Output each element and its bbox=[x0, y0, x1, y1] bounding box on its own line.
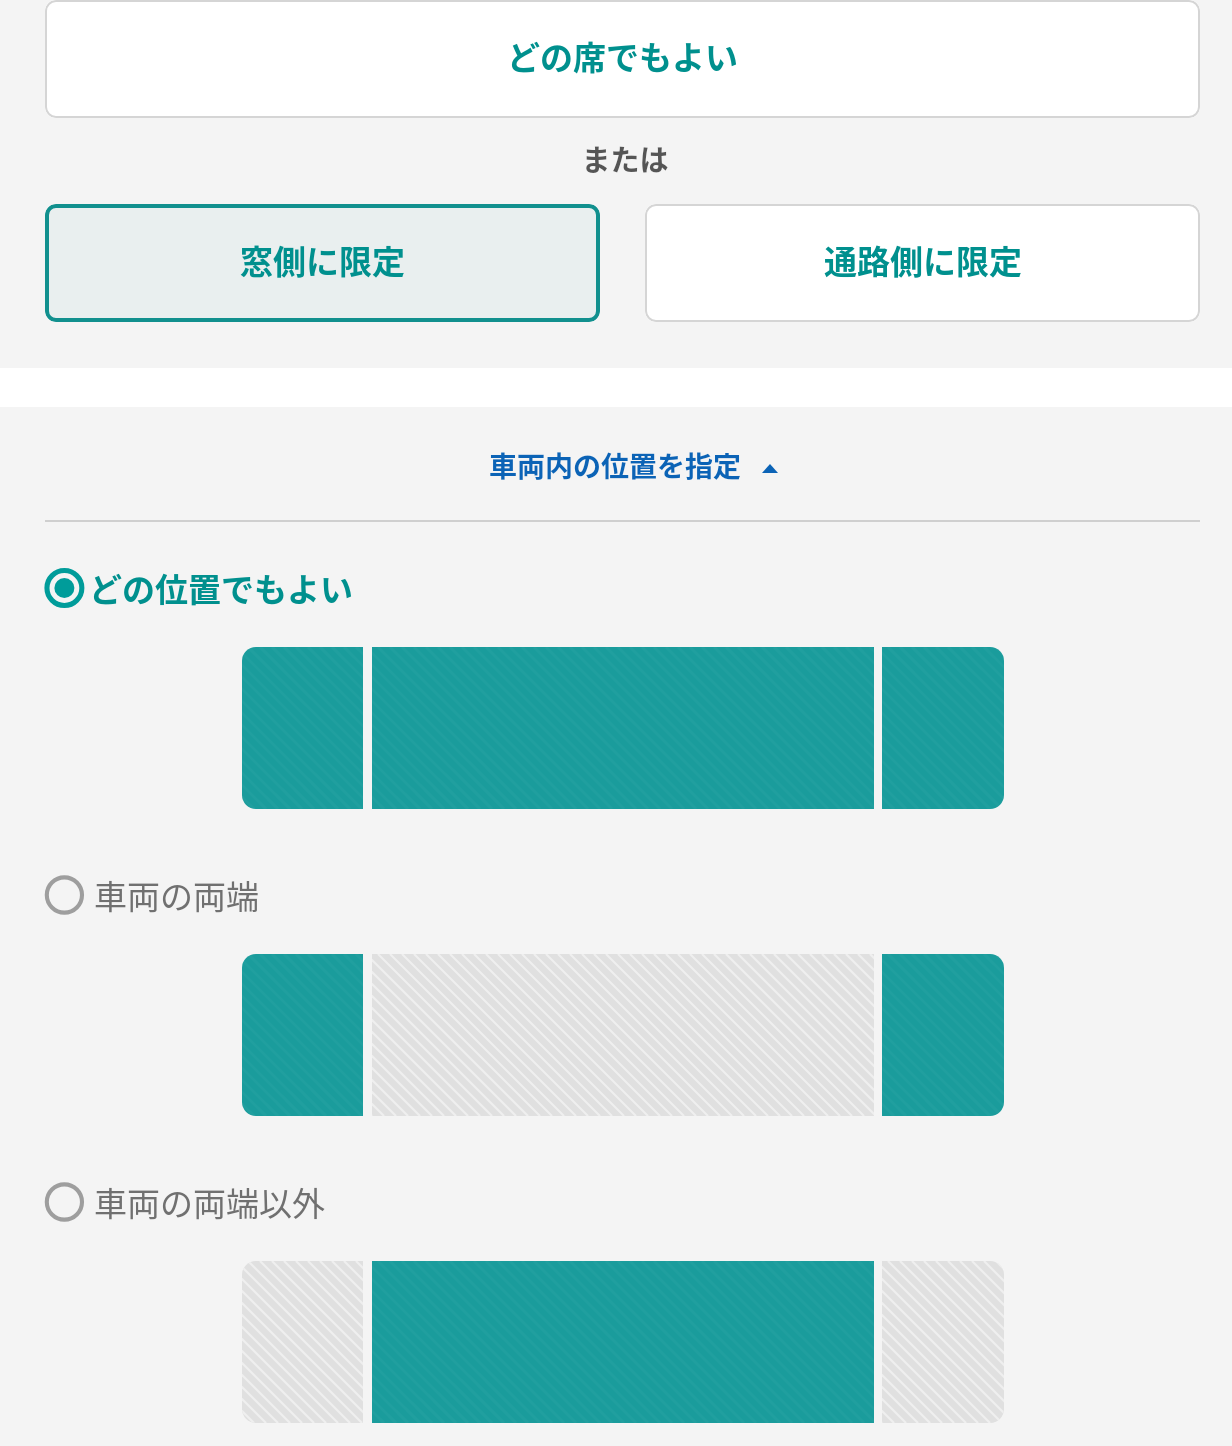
button[interactable]: 通路側に限定 bbox=[645, 204, 1200, 322]
staticText: 窓側に限定 bbox=[240, 236, 405, 284]
staticText: 通路側に限定 bbox=[824, 236, 1022, 284]
button[interactable]: 車両内の位置を指定 bbox=[460, 440, 790, 496]
other: Collapse section bbox=[762, 464, 778, 473]
button[interactable]: どの席でもよい bbox=[45, 0, 1200, 118]
button[interactable]: 窓側に限定 bbox=[45, 204, 600, 322]
staticText: 車両の両端以外 bbox=[94, 1178, 325, 1226]
button[interactable]: どの位置でもよい bbox=[0, 554, 1232, 812]
staticText: 車両内の位置を指定 bbox=[489, 445, 742, 486]
button[interactable]: 車両の両端 bbox=[0, 861, 1232, 1119]
staticText: どの位置でもよい bbox=[89, 564, 353, 612]
staticText: または bbox=[581, 137, 669, 179]
button[interactable]: 車両の両端以外 bbox=[0, 1168, 1232, 1426]
staticText: どの席でもよい bbox=[507, 32, 738, 80]
staticText: 車両の両端 bbox=[94, 871, 259, 919]
